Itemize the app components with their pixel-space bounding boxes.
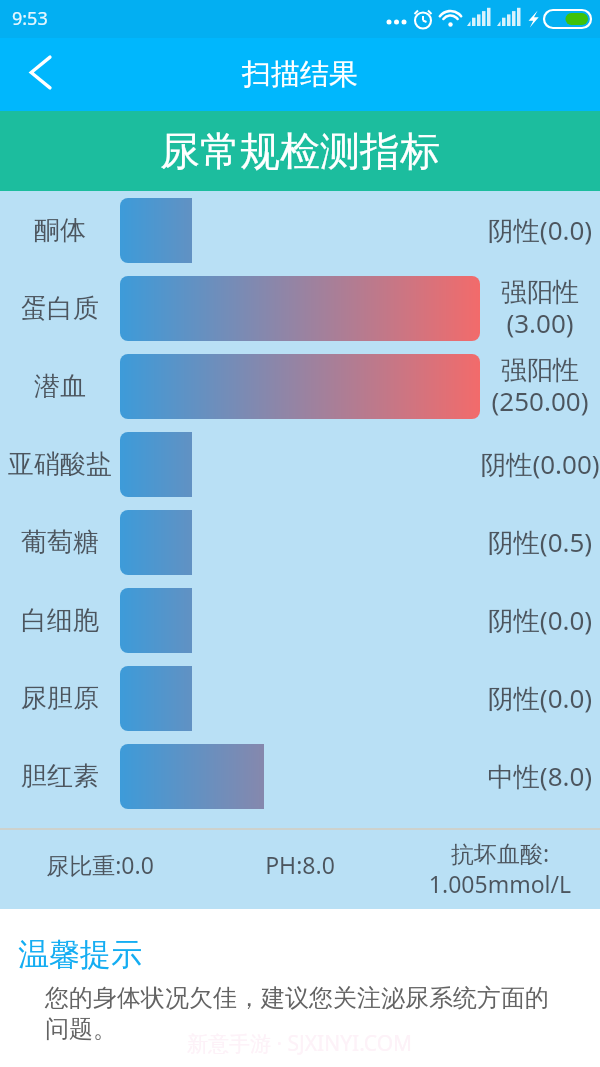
staticText: 胆红素 xyxy=(0,760,120,793)
staticText: PH:8.0 xyxy=(200,849,400,880)
staticText: 阴性(0.5) xyxy=(480,524,600,560)
staticText: 尿常规检测指标 xyxy=(160,126,440,176)
button[interactable]: Back xyxy=(0,38,79,111)
staticText: 葡萄糖 xyxy=(0,526,120,559)
staticText: 蛋白质 xyxy=(0,292,120,325)
button[interactable]: 酮体 xyxy=(0,191,600,269)
staticText: 阴性(0.00) xyxy=(480,446,600,482)
staticText: 亚硝酸盐 xyxy=(0,448,120,481)
staticText: 阴性(0.0) xyxy=(480,680,600,716)
staticText: 阴性(0.0) xyxy=(480,602,600,638)
staticText: 温馨提示 xyxy=(18,935,142,974)
button[interactable]: 尿胆原 xyxy=(0,659,600,737)
staticText: 扫描结果 xyxy=(242,56,358,93)
button[interactable]: 亚硝酸盐 xyxy=(0,425,600,503)
staticText: 酮体 xyxy=(0,214,120,247)
button[interactable]: 潜血 xyxy=(0,347,600,425)
staticText: 抗坏血酸: 1.005mmol/L xyxy=(400,837,600,899)
staticText: 您的身体状况欠佳，建议您关注泌尿系统方面的 问题。 xyxy=(45,983,549,1044)
staticText: 强阳性 (250.00) xyxy=(480,354,600,419)
button[interactable]: 胆红素 xyxy=(0,737,600,815)
staticText: 尿胆原 xyxy=(0,682,120,715)
button[interactable]: 白细胞 xyxy=(0,581,600,659)
button[interactable]: 蛋白质 xyxy=(0,269,600,347)
staticText: 阴性(0.0) xyxy=(480,212,600,248)
button[interactable]: 葡萄糖 xyxy=(0,503,600,581)
staticText: 新意手游 · SJXINYI.COM xyxy=(187,1029,413,1058)
staticText: 潜血 xyxy=(0,370,120,403)
staticText: 尿比重:0.0 xyxy=(0,849,200,880)
staticText: 中性(8.0) xyxy=(480,758,600,794)
staticText: 强阳性 (3.00) xyxy=(480,276,600,341)
staticText: 9:53 xyxy=(12,6,48,31)
staticText: 白细胞 xyxy=(0,604,120,637)
